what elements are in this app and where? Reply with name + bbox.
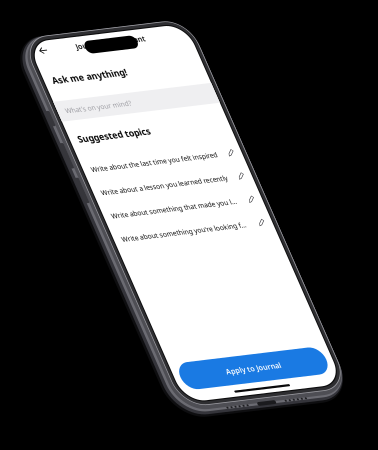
staticText: Journaling Assistant [151,21,323,44]
button[interactable]: Write about something that made you l… [41,396,378,450]
button[interactable]: Back [49,11,93,55]
staticText: Write about something that made you l… [60,413,371,434]
staticText: Write about a lesson you learned recentl… [60,358,374,379]
button[interactable]: Write about the last time you felt inspi… [41,286,378,341]
button[interactable]: Write about a lesson you learned recentl… [41,341,378,396]
staticText: Write about the last time you felt inspi… [60,303,374,324]
staticText: Suggested topics [60,228,240,256]
staticText: What's on your mind? [60,164,224,185]
button[interactable]: What's on your mind? [41,151,378,198]
staticText: Ask me anything! [60,89,246,117]
